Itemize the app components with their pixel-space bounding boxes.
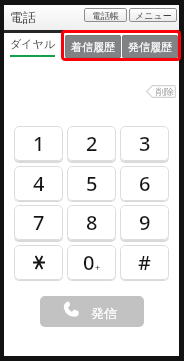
button[interactable]: 4 bbox=[14, 166, 63, 201]
button[interactable]: 8 bbox=[67, 205, 116, 240]
staticText: 1 bbox=[33, 130, 45, 157]
staticText: 3 bbox=[139, 130, 151, 157]
staticText: 削除 bbox=[156, 86, 174, 97]
button[interactable]: 発信 bbox=[40, 296, 144, 327]
staticText: 6 bbox=[139, 170, 151, 197]
button[interactable]: 着信履歴 bbox=[65, 35, 121, 58]
button[interactable]: 発信履歴 bbox=[122, 35, 178, 58]
button[interactable]: 5 bbox=[67, 166, 116, 201]
staticText: ダイヤル bbox=[10, 37, 56, 51]
button[interactable]: 6 bbox=[120, 166, 169, 201]
button[interactable]: 電話 bbox=[4, 5, 179, 30]
button[interactable] bbox=[14, 245, 63, 280]
staticText: 8 bbox=[86, 209, 98, 236]
button[interactable]: 3 bbox=[120, 126, 169, 161]
staticText: 発信 bbox=[91, 305, 117, 321]
button[interactable]: # bbox=[120, 245, 169, 280]
button[interactable]: 電話帳 bbox=[84, 8, 127, 22]
button[interactable]: 0 bbox=[67, 245, 116, 280]
button[interactable]: メニュー bbox=[129, 8, 177, 22]
staticText: 着信履歴 bbox=[71, 40, 115, 54]
staticText: 5 bbox=[86, 170, 98, 197]
staticText: + bbox=[95, 261, 101, 273]
staticText: 4 bbox=[33, 170, 45, 197]
staticText: メニュー bbox=[135, 10, 172, 21]
button[interactable]: ダイヤル bbox=[5, 32, 60, 56]
button[interactable]: 1 bbox=[14, 126, 63, 161]
staticText: 2 bbox=[86, 130, 98, 157]
staticText: 電話 bbox=[10, 9, 36, 25]
staticText: 7 bbox=[33, 209, 45, 236]
staticText: 電話帳 bbox=[92, 10, 119, 21]
staticText: 発信履歴 bbox=[128, 40, 172, 54]
staticText: 9 bbox=[139, 209, 151, 236]
staticText: 0 bbox=[83, 249, 95, 276]
button[interactable]: 7 bbox=[14, 205, 63, 240]
button[interactable]: 削除 delete bbox=[146, 85, 176, 98]
button[interactable]: 9 bbox=[120, 205, 169, 240]
button[interactable]: 2 bbox=[67, 126, 116, 161]
staticText: # bbox=[138, 249, 151, 276]
